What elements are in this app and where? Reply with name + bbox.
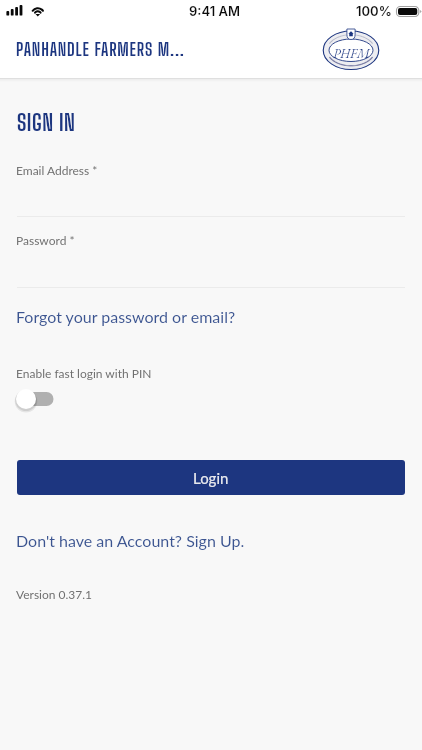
other: PHFM logo — [321, 29, 381, 75]
staticText: 9:41 AM — [189, 3, 240, 19]
staticText: Password * — [16, 233, 75, 247]
button[interactable]: PANHANDLE FARMERS M... — [0, 28, 422, 78]
button[interactable]: Login — [17, 460, 405, 495]
staticText: SIGN IN — [17, 108, 76, 136]
staticText: Don't have an Account? Sign Up. — [16, 531, 245, 550]
staticText: Email Address * — [16, 163, 98, 177]
staticText: Version 0.37.1 — [16, 587, 93, 601]
staticText: Forgot your password or email? — [16, 307, 236, 326]
staticText: PHFM — [333, 45, 370, 62]
button[interactable]: Forgot your password or email? — [0, 303, 422, 331]
button[interactable]: Enable fast login with PIN — [11, 389, 61, 415]
staticText: 100% — [356, 3, 392, 19]
button[interactable]: Don't have an Account? Sign Up. — [0, 527, 422, 555]
staticText: Enable fast login with PIN — [16, 366, 152, 380]
staticText: Login — [193, 469, 229, 487]
staticText: PANHANDLE FARMERS M... — [16, 38, 185, 60]
